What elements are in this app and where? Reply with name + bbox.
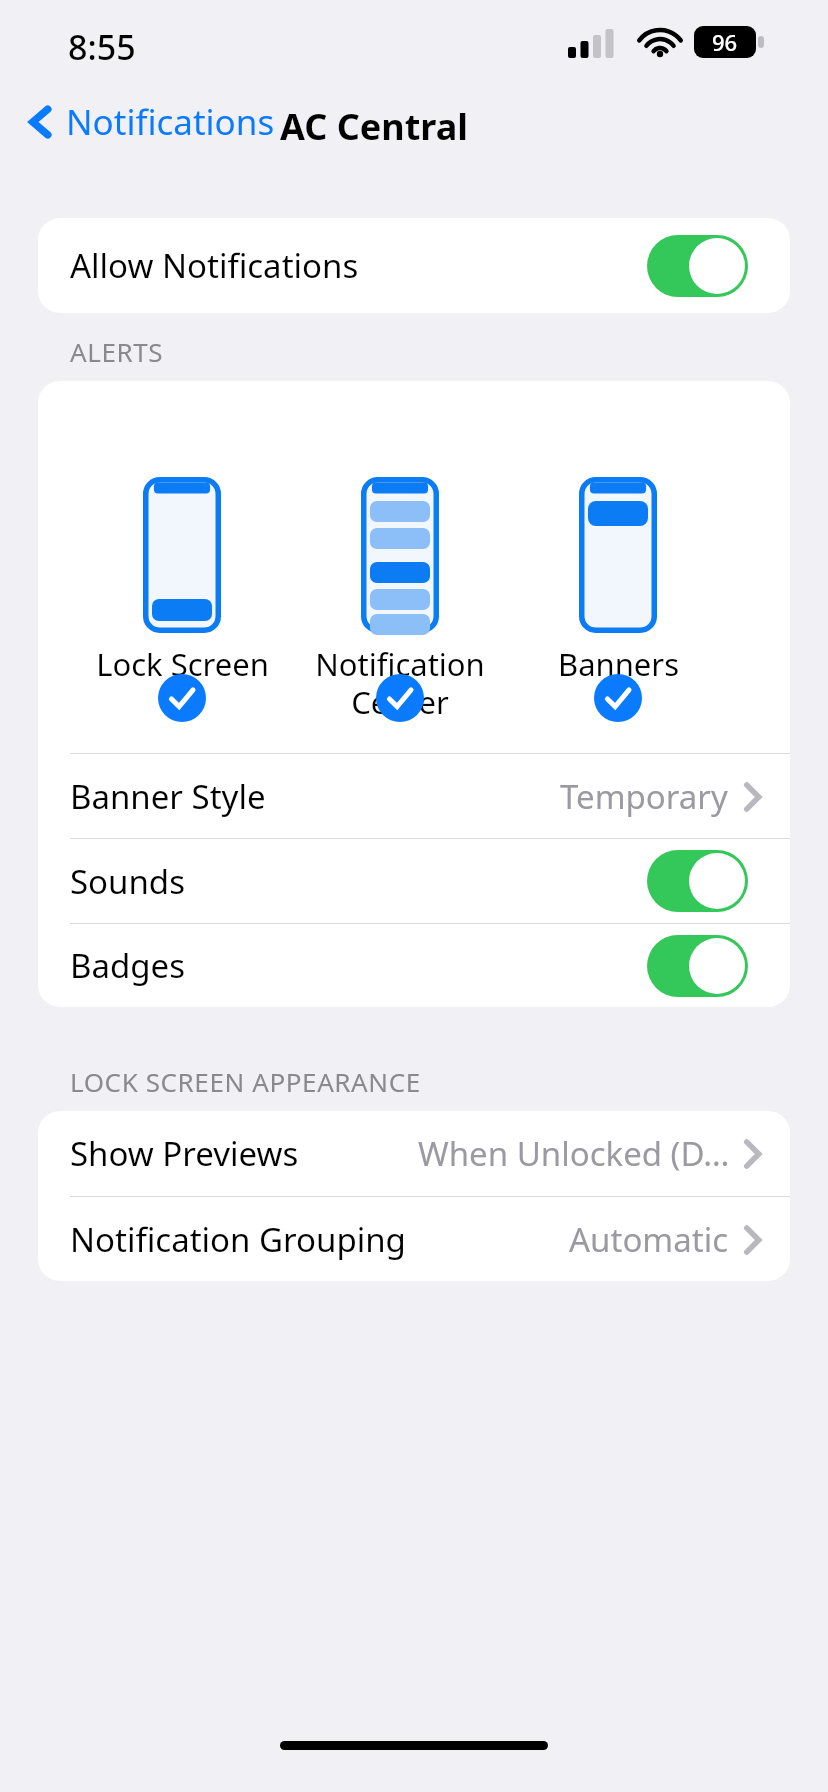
staticText: AC Central: [280, 102, 468, 151]
staticText: ALERTS: [70, 334, 164, 369]
button[interactable]: Toggle on: [647, 935, 748, 997]
staticText: Lock Screen: [96, 643, 269, 685]
button[interactable]: Notification Center: [310, 477, 490, 723]
button[interactable]: Notification Grouping: [38, 1197, 790, 1281]
staticText: Notification Center: [315, 643, 485, 723]
button[interactable]: Badges: [38, 924, 790, 1007]
button[interactable]: Allow Notifications: [38, 218, 790, 313]
staticText: Automatic: [569, 1217, 728, 1262]
staticText: 8:55: [68, 24, 136, 70]
button[interactable]: Notification Center enabled: [376, 674, 424, 722]
button[interactable]: Banners: [528, 477, 708, 685]
staticText: 96: [712, 27, 738, 57]
button[interactable]: Lock Screen enabled: [158, 674, 206, 722]
button[interactable]: Banner Style: [38, 754, 790, 838]
button[interactable]: Show Previews: [38, 1111, 790, 1196]
button[interactable]: Toggle on: [647, 235, 748, 297]
button[interactable]: Sounds: [38, 839, 790, 923]
staticText: Banner Style: [70, 774, 266, 819]
staticText: Badges: [70, 943, 185, 988]
staticText: LOCK SCREEN APPEARANCE: [70, 1064, 421, 1099]
button[interactable]: Banners enabled: [594, 674, 642, 722]
button[interactable]: Back to Notifications: [24, 96, 275, 148]
staticText: Show Previews: [70, 1131, 299, 1176]
staticText: When Unlocked (D…: [418, 1131, 730, 1176]
staticText: Temporary: [560, 774, 728, 819]
staticText: Notification Grouping: [70, 1217, 406, 1262]
staticText: Notifications: [66, 98, 275, 146]
staticText: Sounds: [70, 859, 185, 904]
button[interactable]: Lock Screen: [92, 477, 272, 685]
staticText: Banners: [558, 643, 679, 685]
button[interactable]: Toggle on: [647, 850, 748, 912]
staticText: Allow Notifications: [70, 243, 359, 288]
